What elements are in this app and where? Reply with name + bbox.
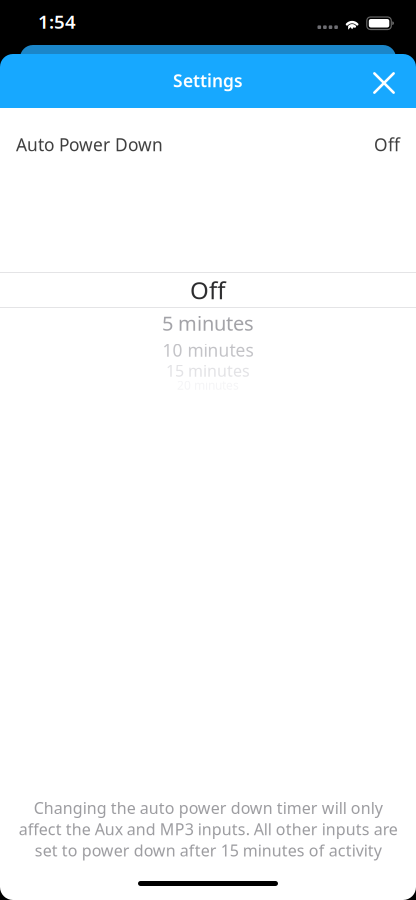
staticText: Settings (173, 69, 243, 92)
staticText: Off (190, 274, 226, 306)
staticText: 5 minutes (162, 310, 254, 336)
button[interactable]: Auto Power Down (0, 108, 416, 272)
staticText: 10 minutes (162, 338, 253, 361)
button[interactable]: 10 minutes (0, 338, 416, 362)
staticText: Auto Power Down (16, 133, 163, 156)
staticText: 15 minutes (166, 360, 250, 381)
staticText: 20 minutes (177, 377, 239, 393)
staticText: Changing the auto power down timer will … (18, 797, 397, 861)
staticText: Off (374, 133, 400, 156)
button[interactable]: 5 minutes (0, 308, 416, 338)
staticText: 1:54 (38, 9, 76, 34)
button[interactable]: Off (0, 273, 416, 307)
button[interactable]: 15 minutes (0, 362, 416, 379)
button[interactable]: Close (362, 61, 406, 105)
